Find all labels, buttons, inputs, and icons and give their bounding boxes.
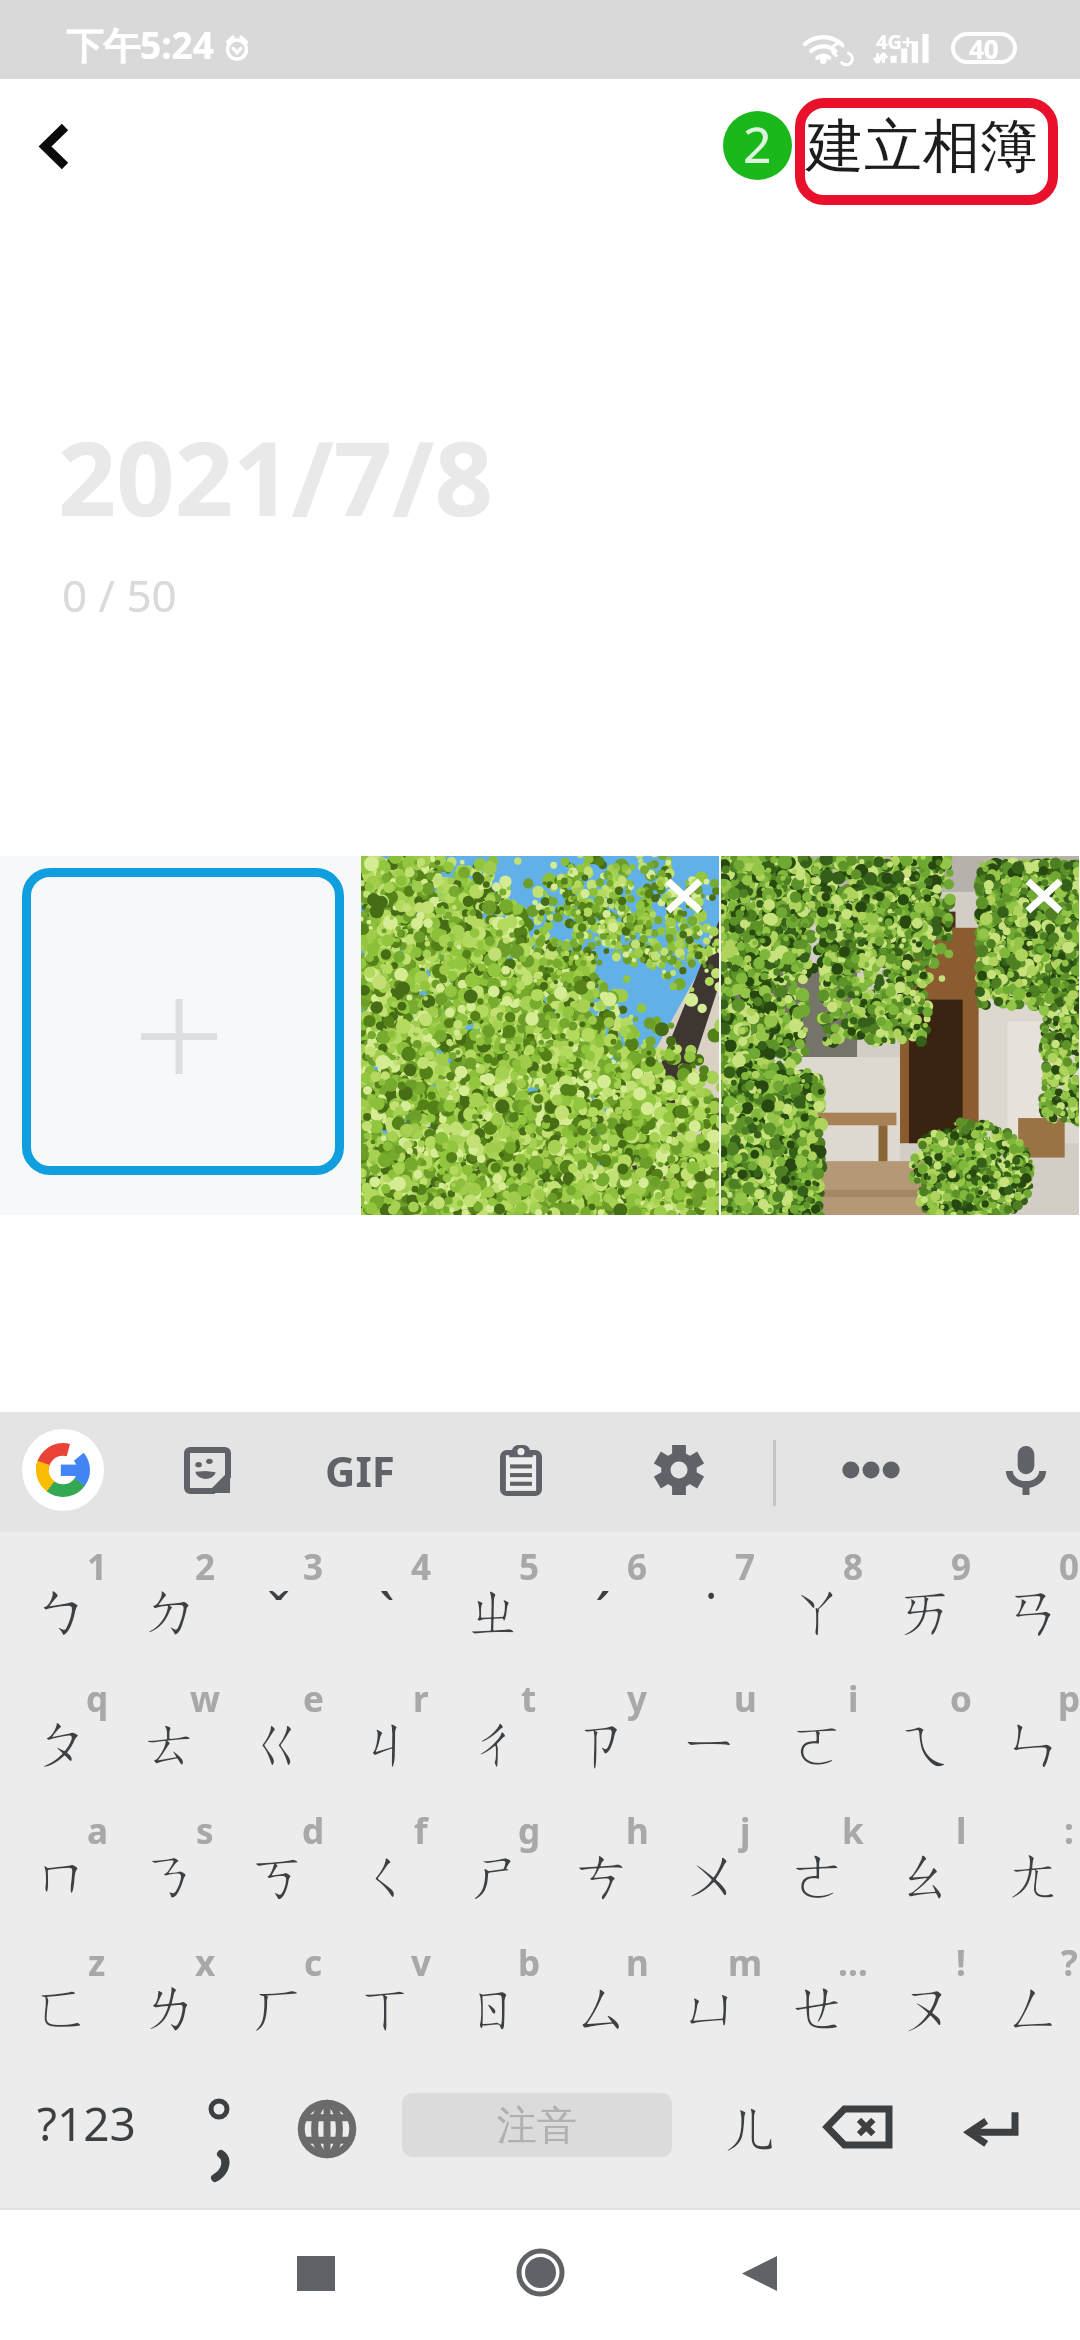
staticText: ㄕ (467, 1841, 524, 1912)
button[interactable]: c (216, 1928, 324, 2060)
button[interactable]: … (756, 1928, 864, 2060)
staticText: ㄒ (359, 1973, 416, 2044)
staticText: d (302, 1807, 325, 1855)
staticText: l (956, 1807, 967, 1855)
button[interactable]: j (648, 1796, 756, 1928)
button[interactable]: ㄦ (697, 2077, 807, 2208)
button[interactable]: f (324, 1796, 432, 1928)
staticText: 9 (951, 1543, 972, 1591)
button[interactable]: Remove photo (994, 856, 1079, 946)
button[interactable]: Punctuation (172, 2077, 272, 2208)
button[interactable]: Back (704, 2218, 814, 2328)
button[interactable]: Back (18, 109, 92, 183)
button[interactable]: a (0, 1796, 108, 1928)
button[interactable]: Google (17, 1424, 109, 1516)
button[interactable]: u (648, 1664, 756, 1796)
button[interactable]: v (324, 1928, 432, 2060)
staticText: g (518, 1807, 541, 1855)
staticText: o (950, 1675, 972, 1723)
button[interactable]: 1 (0, 1532, 108, 1664)
button[interactable]: More options (825, 1424, 917, 1516)
button[interactable]: h (540, 1796, 648, 1928)
button[interactable]: s (108, 1796, 216, 1928)
button[interactable]: Change language (272, 2077, 382, 2208)
button[interactable]: e (216, 1664, 324, 1796)
button[interactable]: r (324, 1664, 432, 1796)
staticText: 2 (195, 1543, 216, 1591)
button[interactable]: g (432, 1796, 540, 1928)
staticText: ㄡ (899, 1973, 956, 2044)
button[interactable]: 8 (756, 1532, 864, 1664)
staticText: y (627, 1675, 647, 1723)
button[interactable]: 5 (432, 1532, 540, 1664)
button[interactable]: 7 (648, 1532, 756, 1664)
button[interactable]: 4 (324, 1532, 432, 1664)
button[interactable]: 3 (216, 1532, 324, 1664)
button[interactable]: Remove photo (634, 856, 719, 946)
button[interactable]: 6 (540, 1532, 648, 1664)
staticText: j (740, 1807, 751, 1855)
staticText: f (414, 1807, 428, 1855)
button[interactable]: ! (864, 1928, 972, 2060)
staticText: ㄅ (35, 1577, 92, 1648)
staticText: ㄎ (251, 1841, 308, 1912)
button[interactable]: : (972, 1796, 1080, 1928)
button[interactable]: n (540, 1928, 648, 2060)
button[interactable]: Voice input (980, 1424, 1072, 1516)
button[interactable]: k (756, 1796, 864, 1928)
button[interactable]: o (864, 1664, 972, 1796)
staticText: h (626, 1807, 649, 1855)
staticText: ㄜ (791, 1841, 848, 1912)
staticText: GIF (325, 1442, 395, 1499)
button[interactable]: p (972, 1664, 1080, 1796)
button[interactable]: Clipboard (475, 1424, 567, 1516)
button[interactable]: Settings (633, 1424, 725, 1516)
staticText: ˋ (379, 1574, 395, 1650)
button[interactable]: q (0, 1664, 108, 1796)
staticText: k (842, 1807, 864, 1855)
button[interactable]: i (756, 1664, 864, 1796)
button[interactable]: Backspace (803, 2077, 913, 2208)
staticText: ㄓ (467, 1577, 524, 1648)
staticText: t (521, 1675, 537, 1723)
staticText: ㄧ (683, 1709, 740, 1780)
button[interactable]: w (108, 1664, 216, 1796)
button[interactable]: 注音 (402, 2093, 672, 2157)
staticText: r (413, 1675, 429, 1723)
button[interactable]: z (0, 1928, 108, 2060)
button[interactable]: m (648, 1928, 756, 2060)
button[interactable]: GIF (314, 1424, 406, 1516)
button[interactable]: b (432, 1928, 540, 2060)
button[interactable]: y (540, 1664, 648, 1796)
button[interactable]: Home (485, 2217, 595, 2327)
button[interactable]: d (216, 1796, 324, 1928)
staticText: ㄏ (251, 1973, 308, 2044)
staticText: ㄛ (791, 1709, 848, 1780)
button[interactable]: Recent apps (261, 2218, 371, 2328)
staticText: 8 (843, 1543, 864, 1591)
staticText: ! (956, 1939, 966, 1987)
staticText: ㄤ (1007, 1841, 1064, 1912)
staticText: ㄖ (467, 1973, 524, 2044)
staticText: ㄔ (467, 1709, 524, 1780)
button[interactable]: Enter (936, 2077, 1046, 2208)
button[interactable]: ?123 (0, 2077, 172, 2208)
button[interactable]: 建立相簿 (806, 101, 1038, 191)
button[interactable]: t (432, 1664, 540, 1796)
button[interactable]: l (864, 1796, 972, 1928)
staticText: m (728, 1939, 763, 1987)
button[interactable]: 9 (864, 1532, 972, 1664)
staticText: ㄥ (1007, 1973, 1064, 2044)
button[interactable]: 2 (108, 1532, 216, 1664)
button[interactable]: ? (972, 1928, 1080, 2060)
staticText: 5 (519, 1543, 540, 1591)
staticText: ㄐ (359, 1709, 416, 1780)
staticText: v (411, 1939, 431, 1987)
button[interactable]: x (108, 1928, 216, 2060)
button[interactable]: 0 (972, 1532, 1080, 1664)
staticText: s (196, 1807, 214, 1855)
button[interactable]: Stickers (161, 1424, 253, 1516)
staticText: ㄣ (1007, 1709, 1064, 1780)
button[interactable]: Add photo (22, 868, 344, 1175)
staticText: ?123 (37, 2092, 136, 2155)
